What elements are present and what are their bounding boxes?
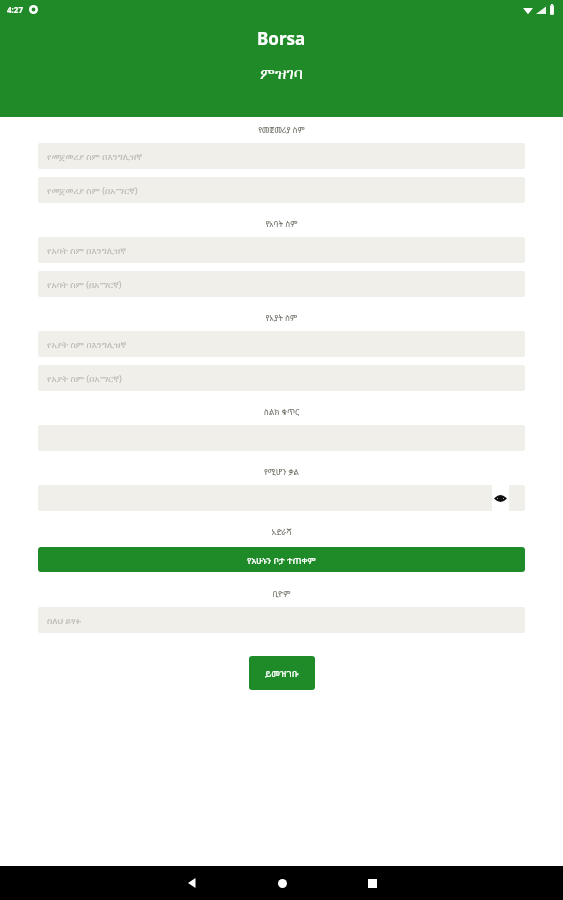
button[interactable]: ስለህ ይፃፉ bbox=[38, 607, 525, 633]
staticText: አድራሻ bbox=[38, 526, 525, 537]
button[interactable]: የመጀመሪያ ስም በእንግሊዝኛ bbox=[38, 143, 525, 169]
button[interactable]: የአባት ስም (በአማርኛ) bbox=[38, 271, 525, 297]
staticText: ይመዝገቡ bbox=[265, 667, 299, 679]
button[interactable]: Toggle password visibility bbox=[38, 485, 525, 511]
staticText: የመጀመሪያ ስም (በአማርኛ) bbox=[47, 184, 138, 196]
staticText: የአያት ስም (በአማርኛ) bbox=[47, 372, 122, 384]
button[interactable]: የመጀመሪያ ስም (በአማርኛ) bbox=[38, 177, 525, 203]
staticText: 4:27 bbox=[7, 4, 23, 15]
staticText: የአሁኑን ቦታ ተጠቀም bbox=[247, 554, 316, 566]
button[interactable]: Toggle password visibility bbox=[492, 485, 509, 511]
staticText: ቢዮም bbox=[38, 588, 525, 599]
staticText: የሚሆን ቃል bbox=[38, 466, 525, 477]
staticText: ምዝገባ bbox=[260, 66, 303, 82]
staticText: ስልክ ቁጥር bbox=[38, 406, 525, 417]
button[interactable]: Recent apps bbox=[355, 866, 389, 900]
staticText: Borsa bbox=[257, 27, 306, 50]
staticText: የአያት ስም bbox=[38, 312, 525, 323]
staticText: የአያት ስም በእንግሊዝኛ bbox=[47, 338, 127, 350]
staticText: የአባት ስም በእንግሊዝኛ bbox=[47, 244, 126, 256]
staticText: ስለህ ይፃፉ bbox=[47, 614, 82, 626]
button[interactable]: ይመዝገቡ bbox=[249, 656, 315, 690]
button[interactable]: የአያት ስም በእንግሊዝኛ bbox=[38, 331, 525, 357]
staticText: የአባት ስም (በአማርኛ) bbox=[47, 278, 122, 290]
staticText: የመጀመሪያ ስም በእንግሊዝኛ bbox=[47, 150, 142, 162]
staticText: የአባት ስም bbox=[38, 218, 525, 229]
button[interactable]: የአባት ስም በእንግሊዝኛ bbox=[38, 237, 525, 263]
button[interactable]: የአሁኑን ቦታ ተጠቀም bbox=[38, 547, 525, 572]
button[interactable]: Home bbox=[265, 866, 299, 900]
button[interactable]: የአያት ስም (በአማርኛ) bbox=[38, 365, 525, 391]
staticText: የመጀመሪያ ስም bbox=[38, 124, 525, 135]
button[interactable]: Back bbox=[175, 866, 209, 900]
